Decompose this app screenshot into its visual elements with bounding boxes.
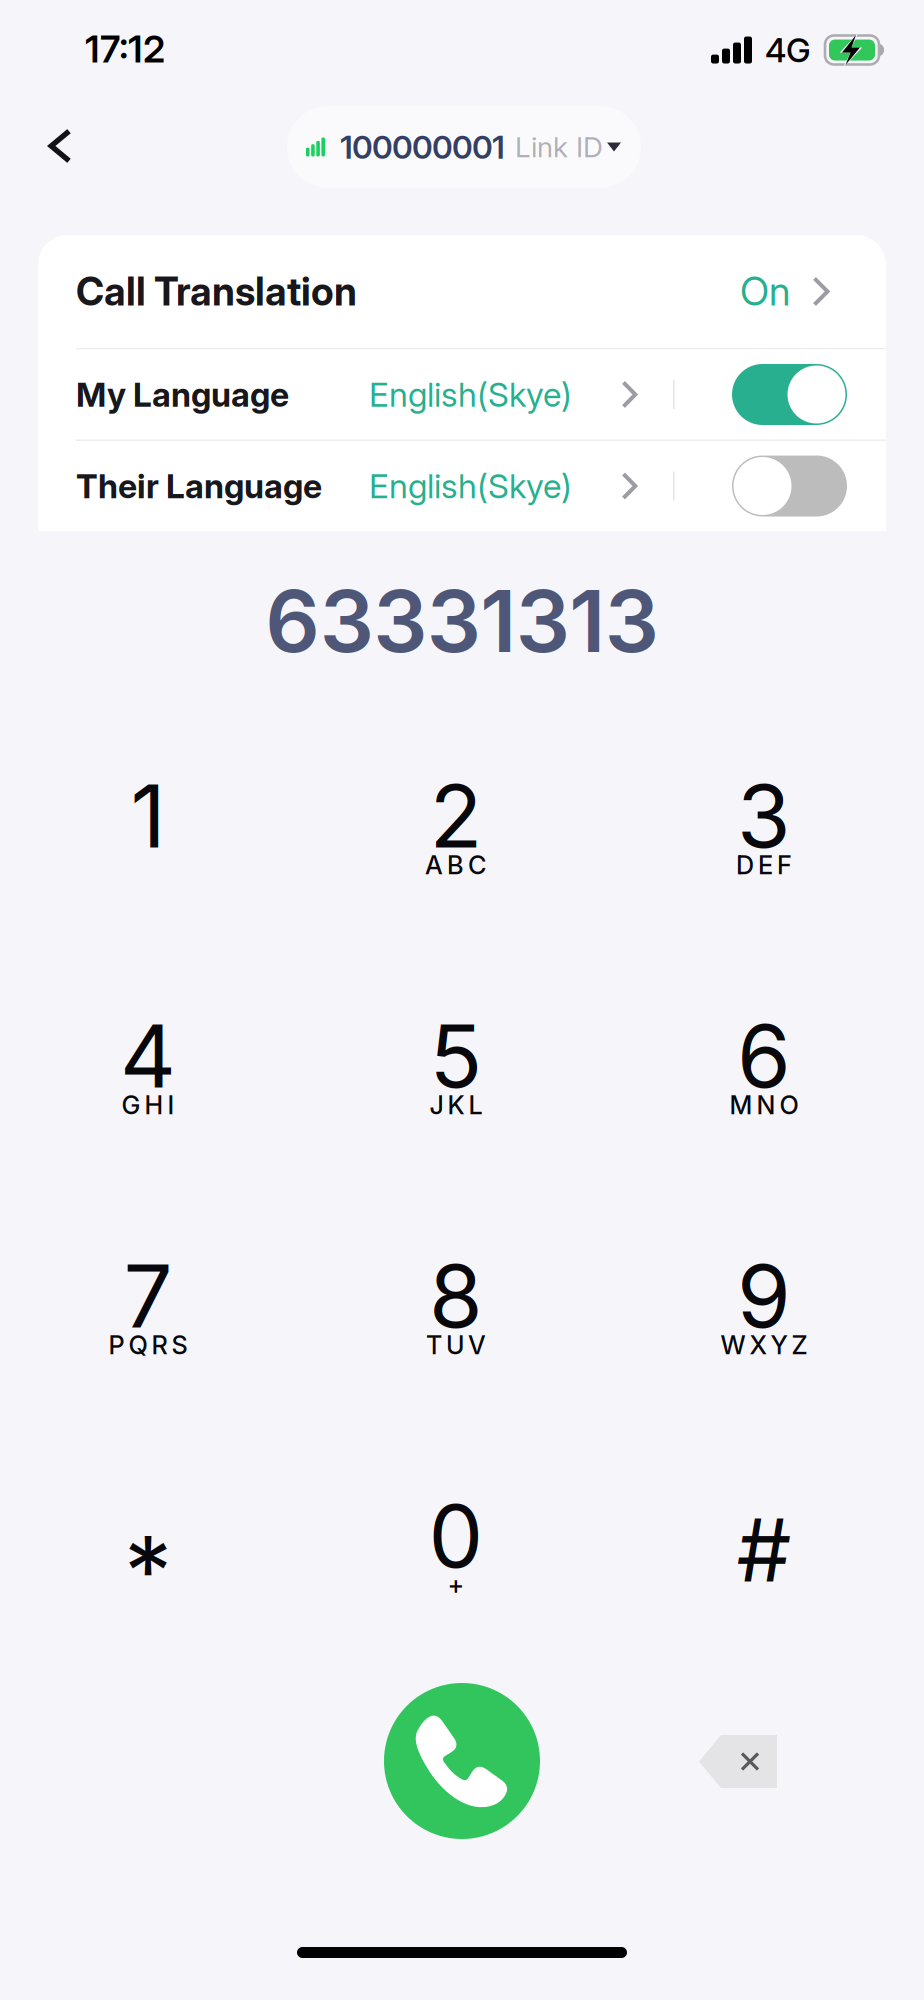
staticText: 7	[123, 1244, 172, 1348]
button[interactable]: Their Language	[38, 441, 653, 531]
button[interactable]: 7	[0, 1254, 302, 1424]
button[interactable]: 2	[302, 774, 610, 944]
staticText: 0	[428, 1484, 483, 1588]
staticText: 2	[429, 764, 482, 868]
staticText: On	[740, 268, 790, 315]
button[interactable]: 1	[0, 774, 302, 944]
staticText: ABC	[425, 850, 487, 880]
staticText: GHI	[121, 1090, 174, 1120]
button[interactable]: My Language	[38, 349, 653, 439]
button[interactable]: 100000001	[287, 106, 641, 188]
staticText: Their Language	[76, 466, 322, 506]
staticText: English(Skye)	[369, 466, 572, 506]
staticText: WXYZ	[720, 1330, 807, 1360]
staticText: 17:12	[85, 26, 165, 72]
button[interactable]: 8	[302, 1254, 610, 1424]
button[interactable]: 5	[302, 1014, 610, 1184]
staticText: JKL	[429, 1090, 482, 1120]
button[interactable]: 0	[302, 1494, 610, 1664]
staticText: Link ID	[515, 130, 603, 164]
staticText: *	[124, 1513, 172, 1629]
staticText: My Language	[76, 374, 289, 415]
staticText: PQRS	[108, 1330, 187, 1360]
staticText: #	[736, 1498, 791, 1602]
button[interactable]: Turn off My Language	[732, 349, 885, 439]
button[interactable]: Back	[18, 104, 102, 188]
staticText: 8	[429, 1244, 483, 1348]
staticText: 3	[737, 764, 791, 868]
staticText: MNO	[729, 1090, 798, 1120]
staticText: English(Skye)	[369, 374, 572, 415]
staticText: Call Translation	[76, 268, 357, 315]
staticText: 5	[429, 1004, 482, 1108]
staticText: 4	[120, 1004, 176, 1108]
staticText: +	[447, 1570, 464, 1600]
staticText: TUV	[426, 1330, 486, 1360]
button[interactable]: 4	[0, 1014, 302, 1184]
staticText: 63331313	[265, 569, 659, 673]
staticText: 9	[737, 1244, 791, 1348]
staticText: DEF	[736, 850, 792, 880]
staticText: 6	[737, 1004, 791, 1108]
button[interactable]: 3	[610, 774, 918, 944]
button[interactable]: 9	[610, 1254, 918, 1424]
button[interactable]: Call	[384, 1683, 540, 1839]
button[interactable]: Delete	[699, 1735, 777, 1788]
button[interactable]: Turn on Their Language	[732, 441, 885, 531]
staticText: 1	[130, 764, 165, 868]
button[interactable]: #	[610, 1494, 918, 1664]
staticText: 100000001	[340, 128, 505, 166]
button[interactable]: *	[0, 1494, 302, 1664]
staticText: 4G	[765, 30, 811, 70]
button[interactable]: Call Translation	[38, 235, 886, 348]
button[interactable]: 6	[610, 1014, 918, 1184]
